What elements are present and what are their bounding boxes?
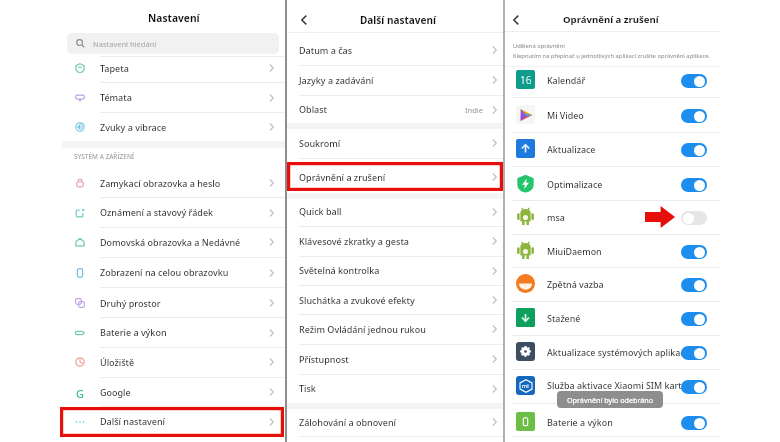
button[interactable]: Toggle off	[681, 211, 707, 225]
button[interactable]: Back	[507, 11, 525, 29]
staticText: Oprávnění a zrušení	[299, 171, 386, 183]
staticText: Aktualizace systémových aplikací	[547, 346, 688, 358]
button[interactable]: Toggle on	[681, 346, 707, 360]
button[interactable]	[62, 83, 285, 113]
button[interactable]: Toggle on	[681, 178, 707, 192]
button[interactable]	[62, 407, 285, 437]
staticText: Kalendář	[547, 74, 586, 86]
staticText: Indie	[465, 105, 483, 115]
button[interactable]	[62, 318, 285, 348]
staticText: Oprávnění a zrušení	[563, 13, 659, 26]
button[interactable]: Toggle on	[681, 143, 707, 157]
button[interactable]: Back	[295, 11, 313, 29]
staticText: Úložiště	[100, 356, 135, 368]
button[interactable]	[285, 374, 503, 404]
staticText: Soukromí	[299, 137, 341, 149]
staticText: 16	[520, 73, 532, 87]
staticText: Domovská obrazovka a Nedávné	[100, 236, 241, 248]
button[interactable]	[503, 405, 720, 439]
staticText: Zobrazení na celou obrazovku	[100, 266, 229, 278]
button[interactable]	[62, 53, 285, 83]
staticText: Oblast	[299, 103, 328, 115]
button[interactable]: Toggle on	[681, 245, 707, 259]
staticText: Udělená oprávnění	[513, 42, 565, 50]
staticText: Google	[100, 386, 131, 398]
button[interactable]: Toggle on	[681, 109, 707, 123]
staticText: Nastavení	[148, 11, 200, 25]
button[interactable]	[503, 132, 720, 166]
staticText: Datum a čas	[299, 44, 353, 56]
staticText: Režim Ovládání jednou rukou	[299, 323, 426, 335]
staticText: msa	[547, 211, 565, 223]
staticText: Tapeta	[100, 62, 129, 74]
button[interactable]	[285, 314, 503, 344]
button[interactable]: Toggle on	[681, 74, 707, 88]
button[interactable]	[285, 65, 503, 95]
button[interactable]	[62, 112, 285, 142]
staticText: G	[76, 386, 84, 398]
button[interactable]	[285, 407, 503, 437]
staticText: Zamykací obrazovka a heslo	[100, 177, 221, 189]
button[interactable]	[503, 335, 720, 369]
staticText: Nastavení hledání	[93, 39, 157, 49]
staticText: Další nastavení	[100, 415, 166, 427]
button[interactable]	[503, 167, 720, 201]
button[interactable]	[503, 200, 720, 234]
staticText: Oprávnění bylo odebráno	[567, 395, 654, 405]
button[interactable]: Toggle on	[681, 312, 707, 326]
button[interactable]	[503, 98, 720, 132]
button[interactable]	[503, 301, 720, 335]
button[interactable]	[285, 256, 503, 286]
button[interactable]	[285, 197, 503, 227]
staticText: MiuiDaemon	[547, 245, 602, 257]
staticText: Přístupnost	[299, 353, 349, 365]
staticText: mi	[522, 382, 529, 389]
staticText: Zvuky a vibrace	[100, 121, 167, 133]
button[interactable]	[62, 227, 285, 257]
staticText: Stažené	[547, 312, 581, 324]
button[interactable]	[285, 344, 503, 374]
button[interactable]	[62, 377, 285, 407]
staticText: Sluchátka a zvukové efekty	[299, 294, 415, 306]
button[interactable]	[503, 369, 720, 403]
button[interactable]	[503, 63, 720, 97]
button[interactable]: Nastavení hledání	[67, 33, 279, 54]
staticText: Quick ball	[299, 205, 342, 217]
staticText: Služba aktivace Xiaomi SIM karty	[547, 379, 687, 391]
staticText: Další nastavení	[360, 13, 436, 27]
button[interactable]	[62, 288, 285, 318]
button[interactable]	[285, 162, 503, 192]
button[interactable]: Toggle on	[681, 416, 707, 430]
staticText: Baterie a výkon	[100, 326, 167, 338]
staticText: SYSTÉM A ZAŘÍZENÍ	[74, 152, 135, 161]
staticText: Jazyky a zadávání	[299, 74, 374, 86]
button[interactable]	[285, 285, 503, 315]
staticText: Oznámení a stavový řádek	[100, 206, 214, 218]
staticText: Baterie a výkon	[547, 416, 613, 428]
button[interactable]: Toggle on	[681, 380, 707, 394]
staticText: Zpětná vazba	[547, 278, 604, 290]
button[interactable]	[503, 234, 720, 268]
button[interactable]	[285, 35, 503, 65]
staticText: Druhý prostor	[100, 297, 161, 309]
button[interactable]	[62, 168, 285, 198]
button[interactable]	[503, 267, 720, 301]
button[interactable]	[285, 128, 503, 158]
staticText: Témata	[100, 91, 132, 103]
staticText: Aktualizace	[547, 143, 596, 155]
staticText: Tisk	[299, 382, 316, 394]
button[interactable]	[62, 347, 285, 377]
button[interactable]	[62, 198, 285, 228]
staticText: Optimalizace	[547, 178, 603, 190]
staticText: Mi Video	[547, 109, 584, 121]
staticText: Zálohování a obnovení	[299, 416, 397, 428]
staticText: Světelná kontrolka	[299, 264, 380, 276]
button[interactable]	[285, 226, 503, 256]
button[interactable]	[62, 258, 285, 288]
button[interactable]: Toggle on	[681, 278, 707, 292]
staticText: Klávesové zkratky a gesta	[299, 235, 409, 247]
button[interactable]	[285, 95, 503, 125]
staticText: Klepnutím na přepínač u jednotlivých apl…	[513, 52, 711, 60]
